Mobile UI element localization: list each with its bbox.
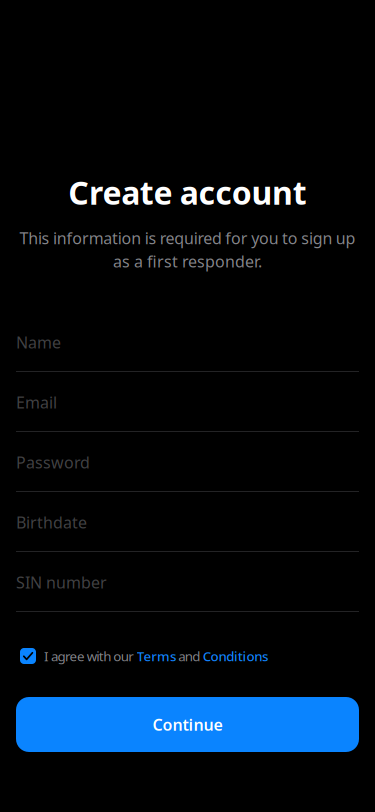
button[interactable]: SIN number	[16, 552, 359, 612]
button[interactable]: I agree with our	[16, 648, 359, 664]
staticText: Continue	[152, 714, 222, 735]
button[interactable]: Email	[16, 372, 359, 432]
button[interactable]: Birthdate	[16, 492, 359, 552]
button[interactable]: Password	[16, 432, 359, 492]
staticText: Email	[16, 392, 57, 413]
staticText: Birthdate	[16, 512, 87, 533]
staticText: Create account	[68, 171, 307, 213]
staticText: and	[176, 647, 203, 665]
staticText: I agree with our	[44, 647, 137, 665]
staticText: Terms	[137, 647, 176, 665]
staticText: Name	[16, 332, 61, 353]
staticText: Conditions	[203, 647, 268, 665]
staticText: SIN number	[16, 572, 107, 593]
staticText: as a first responder.	[113, 251, 262, 272]
button[interactable]: Name	[16, 312, 359, 372]
staticText: This information is required for you to …	[19, 227, 355, 249]
staticText: Password	[16, 452, 90, 473]
button[interactable]: Continue	[16, 697, 359, 752]
